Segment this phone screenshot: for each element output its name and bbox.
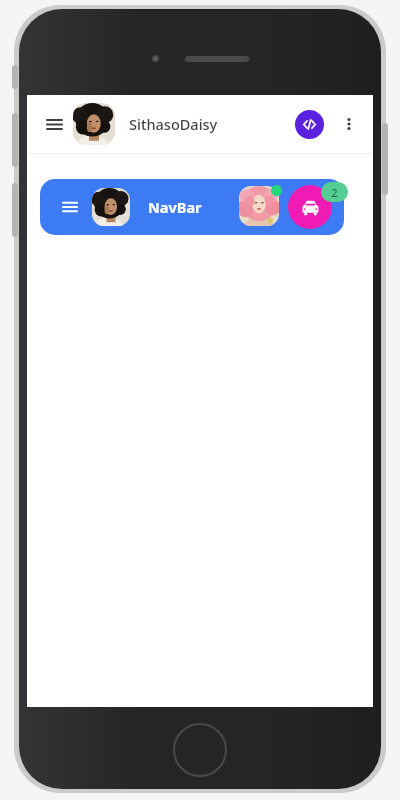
- button[interactable]: Profile picture: [73, 103, 115, 145]
- button[interactable]: Contact avatar, online: [239, 186, 281, 228]
- staticText: SithasoDaisy: [129, 114, 218, 134]
- button[interactable]: Code: [295, 110, 324, 139]
- button[interactable]: Rides: [288, 185, 332, 229]
- button[interactable]: Navigation menu: [56, 193, 84, 221]
- button[interactable]: More options: [335, 110, 363, 138]
- staticText: 2: [331, 185, 338, 200]
- staticText: NavBar: [148, 197, 202, 217]
- button[interactable]: Menu: [37, 107, 71, 141]
- button[interactable]: Navigation menu: [40, 179, 344, 235]
